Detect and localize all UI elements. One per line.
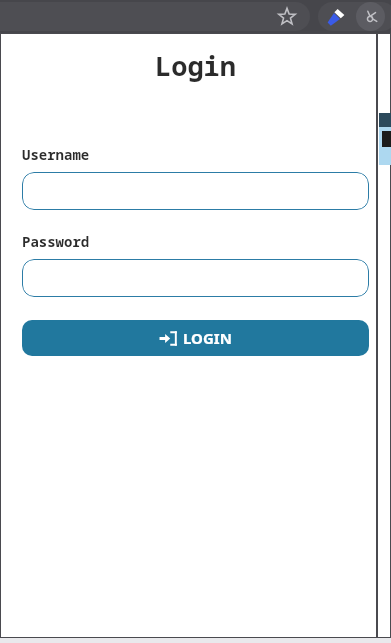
staticText: LOGIN — [183, 328, 232, 348]
button[interactable]: Color picker — [326, 7, 346, 27]
button[interactable]: LOGIN — [22, 320, 369, 356]
staticText: Login — [0, 47, 391, 84]
button[interactable] — [22, 259, 369, 297]
button[interactable]: Bookmark — [278, 8, 296, 26]
button[interactable] — [22, 172, 369, 210]
staticText: Username — [22, 145, 90, 164]
button[interactable] — [0, 2, 310, 31]
button[interactable]: Inspect — [356, 2, 385, 31]
staticText: Password — [22, 232, 90, 251]
